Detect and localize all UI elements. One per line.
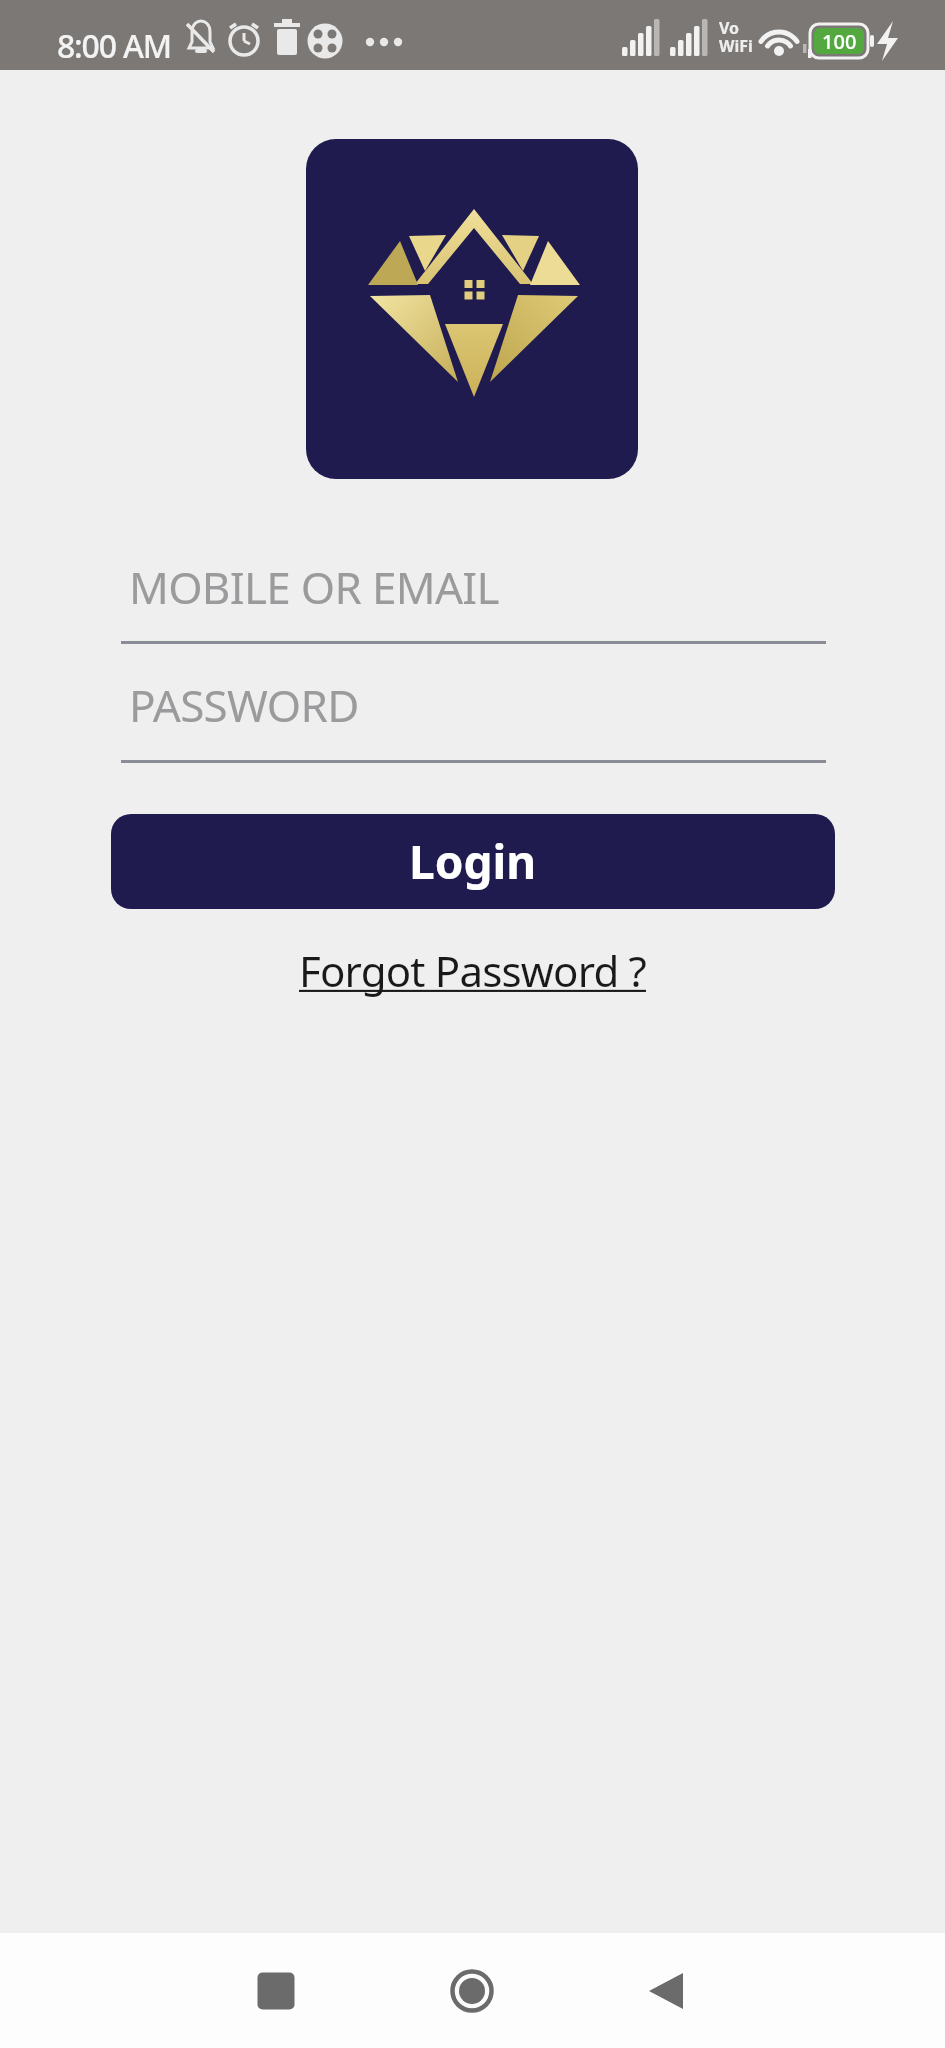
- staticText: MOBILE OR EMAIL: [129, 557, 499, 617]
- button[interactable]: Login: [111, 814, 835, 909]
- button[interactable]: MOBILE OR EMAIL: [121, 540, 826, 644]
- button[interactable]: Forgot Password ?: [299, 942, 646, 999]
- staticText: Vo WiFi: [719, 17, 753, 57]
- staticText: Login: [409, 830, 537, 893]
- staticText: 100: [822, 28, 857, 55]
- button[interactable]: [216, 1933, 336, 2048]
- staticText: 8:00 AM: [57, 24, 171, 68]
- button[interactable]: [606, 1933, 726, 2048]
- button[interactable]: PASSWORD: [121, 659, 826, 763]
- staticText: PASSWORD: [129, 675, 359, 735]
- button[interactable]: [412, 1933, 532, 2048]
